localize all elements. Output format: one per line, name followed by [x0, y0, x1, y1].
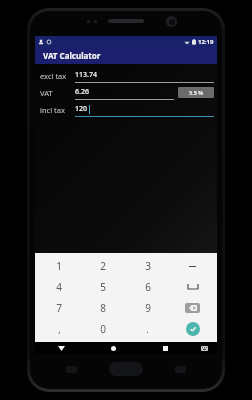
button[interactable]: 5.5 %	[178, 87, 214, 98]
staticText: 12:19	[198, 38, 214, 46]
button[interactable]: 7	[37, 297, 81, 318]
button[interactable]: VAT	[35, 84, 217, 101]
button[interactable]: 3	[125, 256, 170, 276]
staticText: 9	[145, 301, 151, 315]
staticText: 4	[56, 280, 62, 294]
button[interactable]: .	[125, 318, 170, 339]
button[interactable]: Done	[170, 318, 215, 339]
button[interactable]: Home	[87, 342, 139, 354]
button[interactable]: 9	[125, 297, 170, 318]
staticText: 5	[100, 280, 106, 294]
staticText: 1	[56, 259, 62, 273]
staticText: 5.5 %	[189, 89, 204, 96]
button[interactable]: 8	[81, 297, 125, 318]
staticText: 2	[100, 259, 106, 273]
button[interactable]: 2	[81, 256, 125, 276]
button[interactable]: Backspace	[170, 297, 215, 318]
button[interactable]: Switch keyboard	[191, 342, 217, 354]
staticText: VAT Calculator	[43, 50, 101, 61]
staticText: 6	[145, 280, 151, 294]
button[interactable]: Recents	[139, 342, 191, 354]
button[interactable]: ,	[37, 318, 81, 339]
button[interactable]: 1	[37, 256, 81, 276]
button[interactable]: excl tax	[35, 67, 217, 84]
staticText: ,	[58, 323, 61, 335]
button[interactable]: 4	[37, 276, 81, 297]
staticText: excl tax	[40, 71, 72, 81]
button[interactable]: 5	[81, 276, 125, 297]
staticText: incl tax	[40, 105, 72, 115]
staticText: 3	[145, 259, 151, 273]
button[interactable]: 6	[125, 276, 170, 297]
staticText: 113.74	[75, 70, 97, 80]
staticText: VAT	[40, 88, 72, 98]
staticText: 6.26	[75, 87, 89, 97]
button[interactable]: Back	[35, 342, 87, 354]
staticText: 8	[100, 301, 106, 315]
staticText: 120	[75, 104, 88, 114]
button[interactable]: Space	[170, 276, 215, 297]
staticText: 0	[100, 322, 106, 336]
button[interactable]: 0	[81, 318, 125, 339]
button[interactable]: Minus	[170, 256, 215, 276]
button[interactable]: incl tax	[35, 101, 217, 118]
staticText: 7	[56, 301, 62, 315]
staticText: .	[146, 323, 149, 335]
